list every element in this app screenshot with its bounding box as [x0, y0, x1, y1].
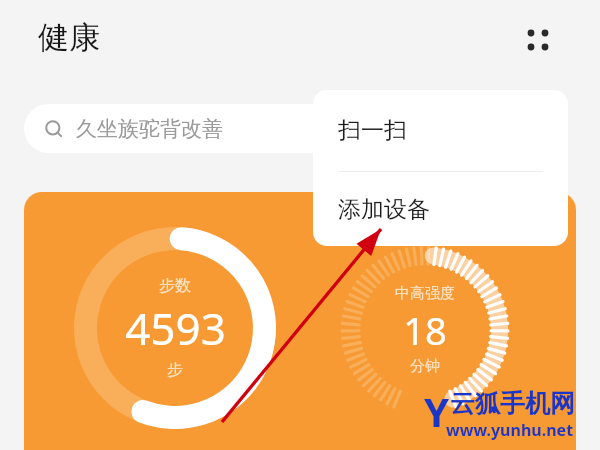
staticText: 分钟 — [410, 357, 440, 376]
staticText: 扫一扫 — [338, 116, 407, 145]
staticText: Y — [424, 384, 450, 438]
staticText: 中高强度 — [395, 284, 455, 303]
staticText: 4593 — [125, 298, 226, 358]
button[interactable]: 扫一扫 — [313, 90, 568, 171]
button[interactable]: 添加设备 — [313, 172, 568, 246]
staticText: www.yunhu.net — [446, 419, 574, 441]
staticText: 云狐手机网 — [450, 388, 575, 419]
staticText: 18 — [403, 304, 447, 356]
button[interactable] — [24, 192, 576, 450]
button[interactable]: More options — [512, 14, 564, 66]
staticText: 步数 — [159, 276, 191, 296]
button[interactable]: 步数 — [74, 227, 276, 429]
button[interactable]: 久坐族驼背改善 — [24, 104, 354, 153]
staticText: 久坐族驼背改善 — [76, 116, 223, 142]
button[interactable]: 中高强度 — [340, 245, 510, 415]
staticText: 步 — [167, 360, 183, 380]
staticText: 健康 — [38, 18, 100, 57]
staticText: 添加设备 — [338, 195, 430, 224]
